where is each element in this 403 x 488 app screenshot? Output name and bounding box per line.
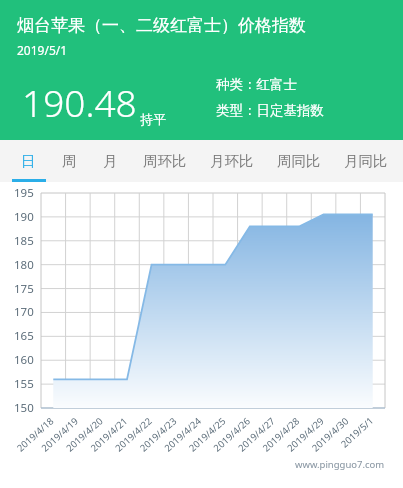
staticText: 种类：红富士: [216, 76, 297, 93]
staticText: 日: [21, 152, 36, 170]
staticText: 周同比: [277, 152, 321, 170]
staticText: 月: [103, 152, 118, 170]
button[interactable]: 月同比: [332, 140, 399, 182]
button[interactable]: 周同比: [265, 140, 332, 182]
button[interactable]: 周环比: [131, 140, 198, 182]
button[interactable]: 月环比: [198, 140, 265, 182]
staticText: 190.48: [22, 77, 137, 127]
staticText: 月环比: [210, 152, 254, 170]
staticText: 2019/5/1: [17, 42, 68, 58]
staticText: 周环比: [143, 152, 187, 170]
staticText: 周: [62, 152, 77, 170]
button[interactable]: 日: [8, 140, 49, 182]
staticText: 类型：日定基指数: [216, 102, 324, 119]
staticText: 持平: [140, 111, 166, 127]
button[interactable]: 周: [49, 140, 90, 182]
staticText: 烟台苹果（一、二级红富士）价格指数: [17, 15, 306, 36]
button[interactable]: 月: [90, 140, 131, 182]
staticText: 月同比: [344, 152, 388, 170]
